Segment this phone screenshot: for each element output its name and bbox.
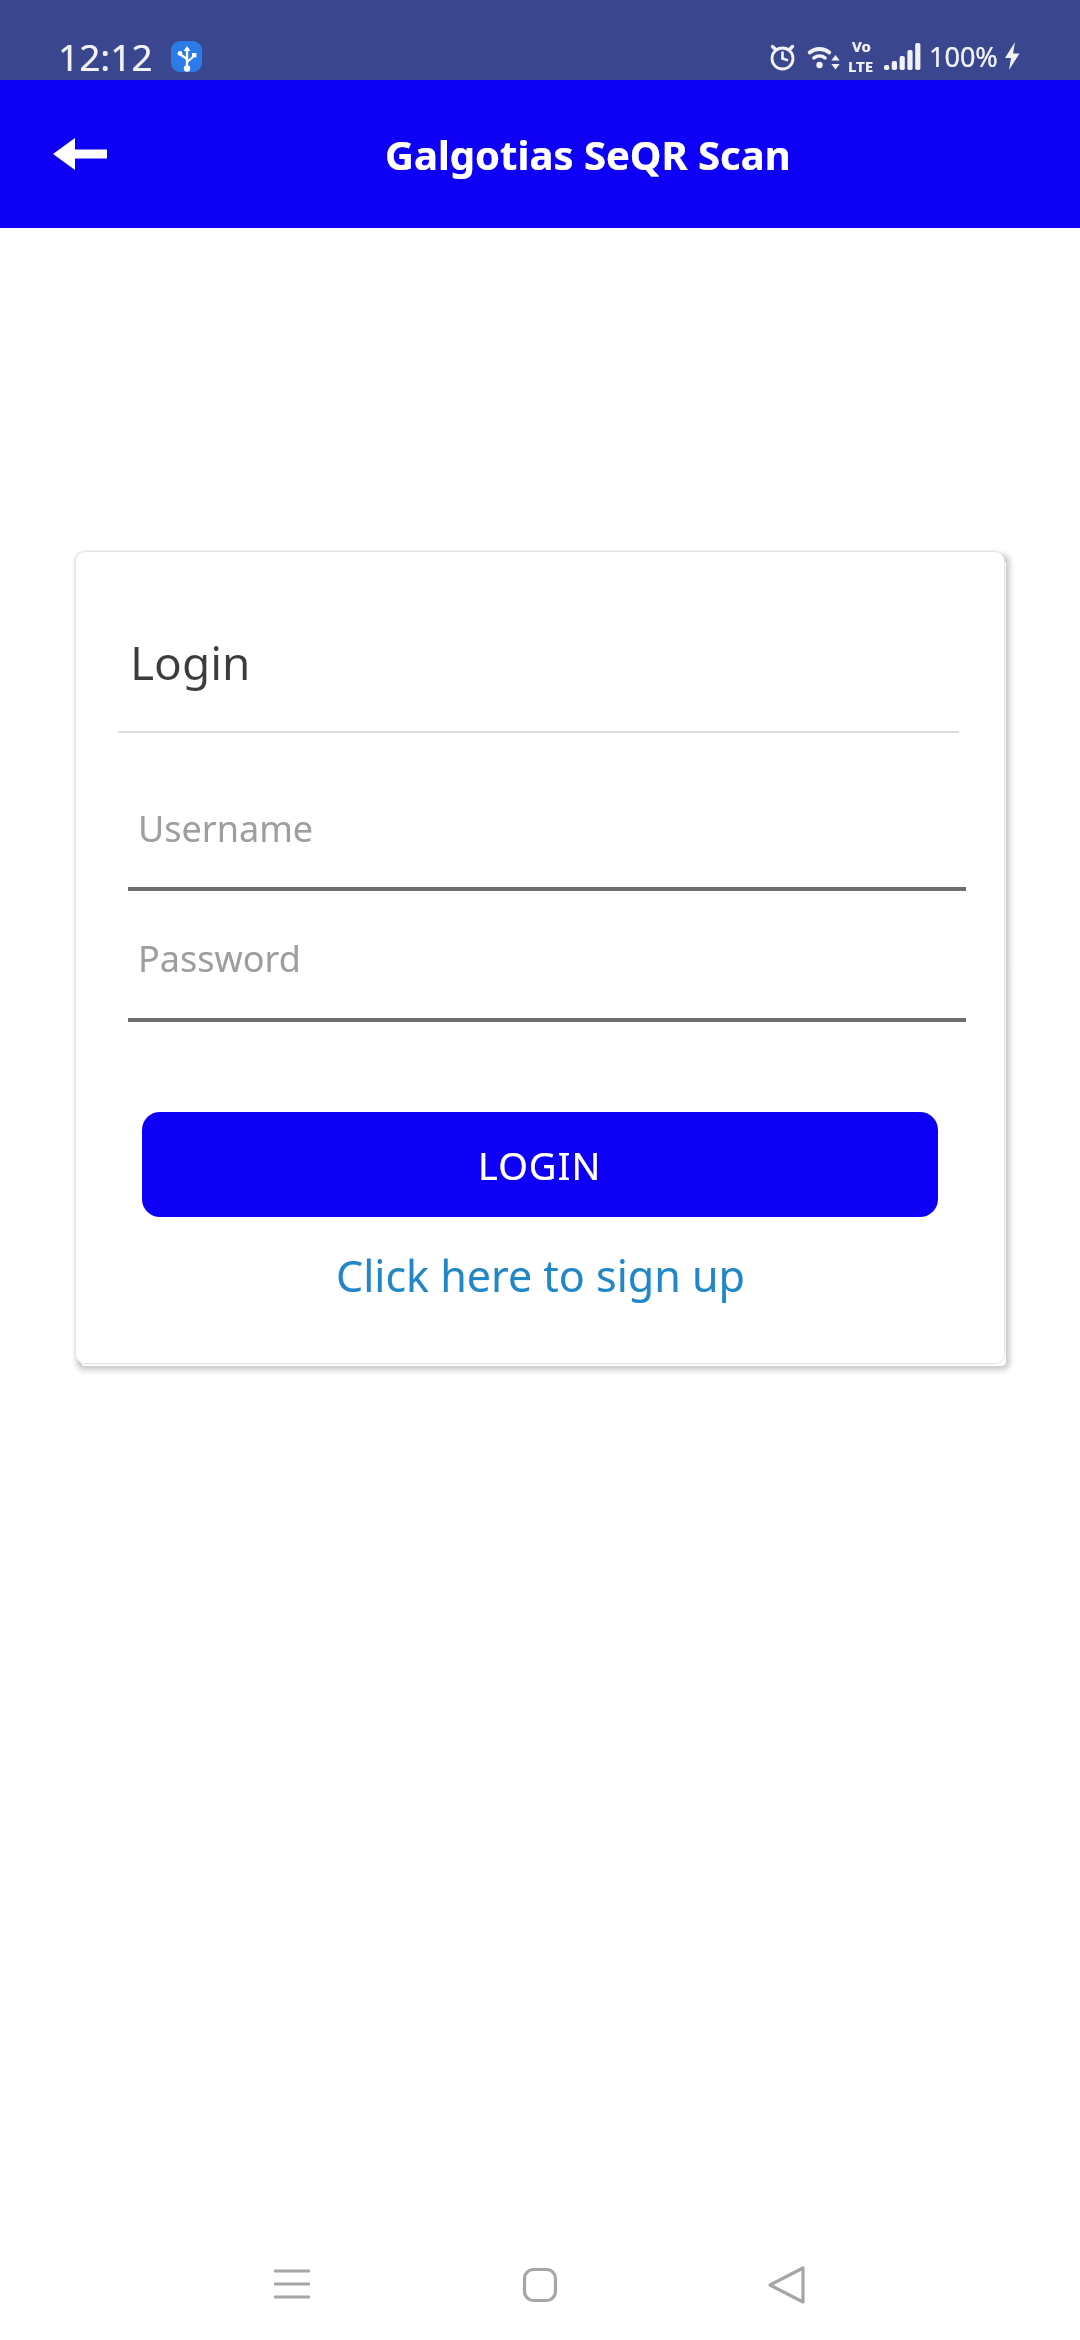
staticText: Username xyxy=(138,804,314,853)
button[interactable]: Click here to sign up xyxy=(75,1246,1005,1305)
button[interactable] xyxy=(30,104,130,204)
staticText: Click here to sign up xyxy=(336,1246,745,1305)
staticText: 12:12 xyxy=(58,31,153,81)
button[interactable] xyxy=(747,2245,827,2325)
staticText: LTE xyxy=(848,56,874,76)
staticText: Login xyxy=(130,631,251,694)
staticText: 100% xyxy=(929,38,998,75)
staticText: LOGIN xyxy=(478,1139,602,1191)
staticText: Password xyxy=(138,934,301,983)
staticText: Vo xyxy=(852,36,871,56)
button[interactable]: LOGIN xyxy=(142,1112,938,1217)
staticText: Galgotias SeQR Scan xyxy=(385,127,791,181)
button[interactable] xyxy=(252,2245,332,2325)
button[interactable] xyxy=(500,2245,580,2325)
